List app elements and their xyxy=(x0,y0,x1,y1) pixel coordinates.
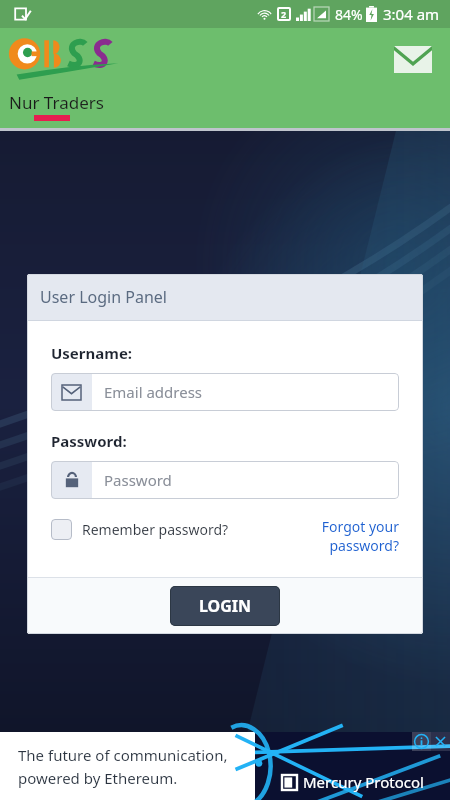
button[interactable]: LOGIN xyxy=(170,586,280,626)
staticText: powered by Ethereum. xyxy=(18,768,178,788)
staticText: 84% xyxy=(335,5,363,24)
staticText: LOGIN xyxy=(199,595,252,617)
staticText: User Login Panel xyxy=(40,286,167,308)
staticText: Username: xyxy=(51,343,133,363)
button[interactable]: Email address xyxy=(51,373,399,411)
button[interactable]: Close ad xyxy=(431,732,450,751)
button[interactable]: Remember password? xyxy=(51,517,307,542)
staticText: Email address xyxy=(104,382,203,402)
staticText: The future of communication, xyxy=(18,745,228,765)
staticText: 3:04 am xyxy=(383,4,440,24)
button[interactable]: Password xyxy=(51,461,399,499)
staticText: Password: xyxy=(51,431,127,451)
staticText: Nur Traders xyxy=(9,91,104,114)
staticText: Password xyxy=(104,470,172,490)
button[interactable]: Forgot your password? xyxy=(307,517,399,555)
button[interactable]: Ad info xyxy=(412,732,431,751)
staticText: 2 xyxy=(281,8,287,20)
button[interactable]: Messages xyxy=(390,36,436,82)
staticText: Mercury Protocol xyxy=(303,772,424,792)
staticText: Remember password? xyxy=(82,520,229,539)
